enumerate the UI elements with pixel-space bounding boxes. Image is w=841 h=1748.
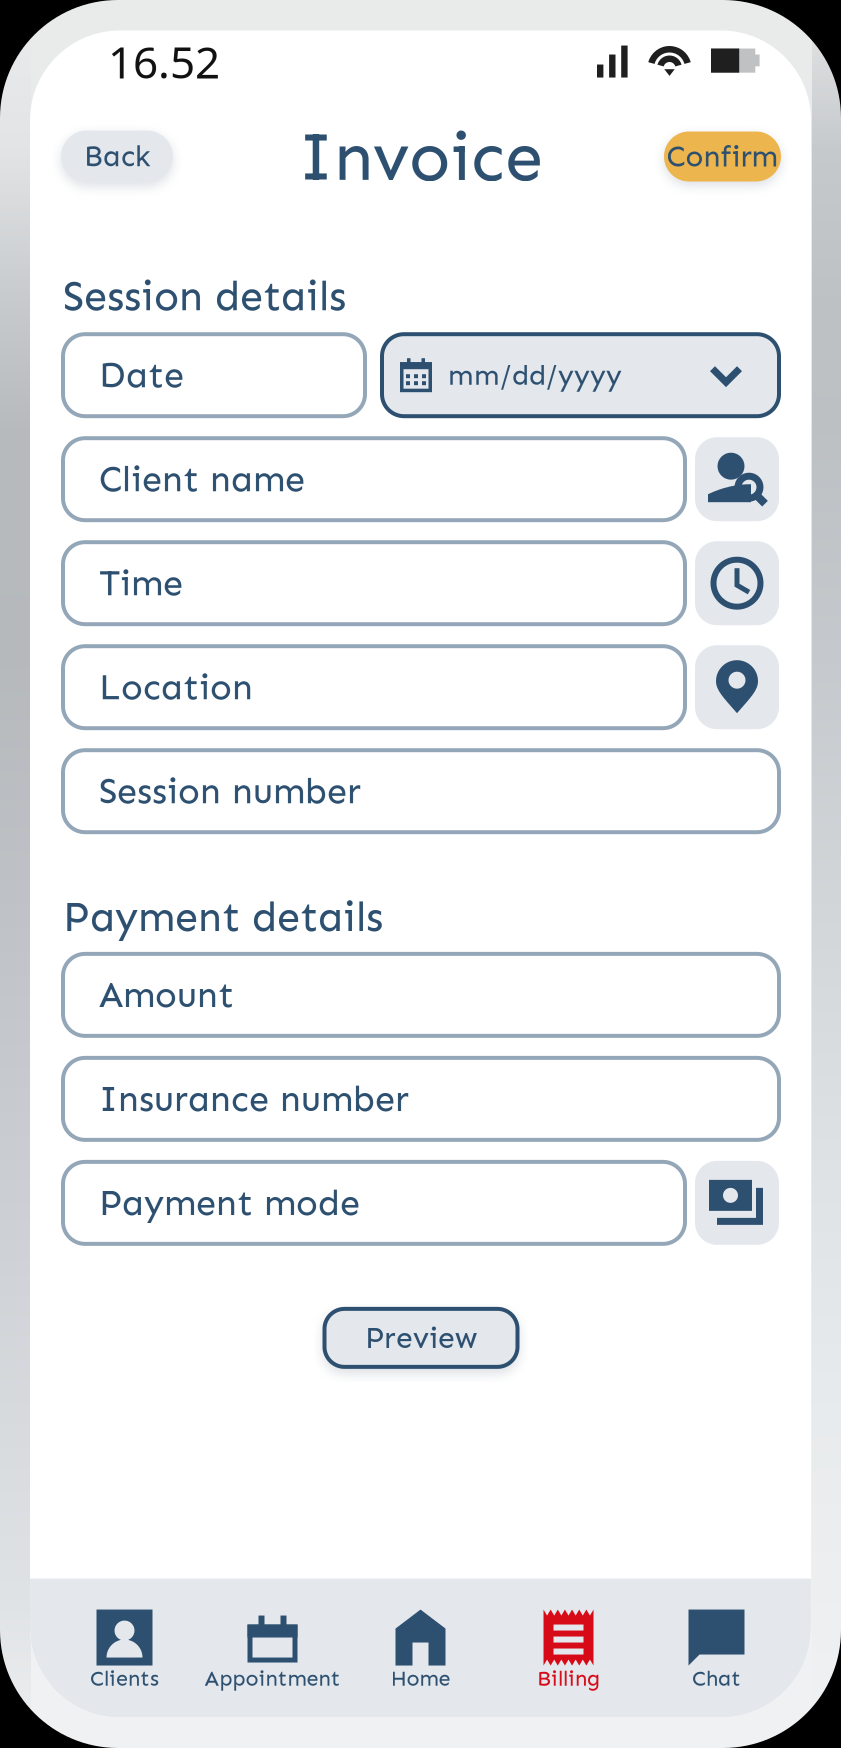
staticText: 16.52 bbox=[108, 32, 220, 91]
button[interactable]: Back bbox=[61, 130, 173, 182]
staticText: Appointment bbox=[204, 1666, 340, 1691]
button[interactable]: Pick location bbox=[695, 645, 779, 729]
staticText: Payment mode bbox=[99, 1181, 360, 1224]
button[interactable]: Find client bbox=[695, 437, 779, 521]
staticText: Date bbox=[99, 354, 184, 397]
staticText: mm/dd/yyyy bbox=[448, 358, 622, 392]
staticText: Location bbox=[99, 666, 253, 709]
staticText: Confirm bbox=[666, 139, 778, 174]
button[interactable]: Preview bbox=[324, 1309, 517, 1367]
staticText: Session details bbox=[63, 271, 346, 321]
staticText: Chat bbox=[692, 1666, 741, 1691]
button[interactable]: Insurance number bbox=[63, 1058, 779, 1140]
button[interactable]: Appointment bbox=[198, 1578, 346, 1717]
button[interactable]: Time bbox=[63, 542, 685, 624]
staticText: Payment details bbox=[63, 892, 383, 942]
button[interactable]: Confirm bbox=[664, 131, 781, 181]
staticText: Client name bbox=[99, 458, 305, 501]
staticText: Insurance number bbox=[99, 1077, 409, 1120]
staticText: Invoice bbox=[298, 115, 543, 198]
button[interactable]: Location bbox=[63, 646, 685, 728]
button[interactable]: Pick time bbox=[695, 541, 779, 625]
button[interactable]: Payment mode bbox=[63, 1162, 685, 1244]
staticText: Preview bbox=[365, 1320, 477, 1356]
button[interactable]: Clients bbox=[50, 1578, 198, 1717]
button[interactable]: Billing bbox=[494, 1578, 642, 1717]
button[interactable]: Chat bbox=[642, 1578, 790, 1717]
button[interactable]: Payment mode bbox=[695, 1161, 779, 1245]
button[interactable]: Date bbox=[63, 334, 365, 416]
button[interactable]: Amount bbox=[63, 954, 779, 1036]
staticText: Amount bbox=[99, 973, 234, 1016]
staticText: Time bbox=[99, 562, 183, 605]
staticText: Back bbox=[84, 139, 150, 174]
staticText: Session number bbox=[99, 770, 361, 813]
staticText: Clients bbox=[90, 1666, 159, 1691]
staticText: Home bbox=[390, 1666, 450, 1691]
button[interactable]: Session number bbox=[63, 750, 779, 832]
button[interactable]: Home bbox=[346, 1578, 494, 1717]
button[interactable]: Client name bbox=[63, 438, 685, 520]
button[interactable]: mm/dd/yyyy bbox=[382, 334, 779, 416]
staticText: Billing bbox=[537, 1666, 600, 1691]
